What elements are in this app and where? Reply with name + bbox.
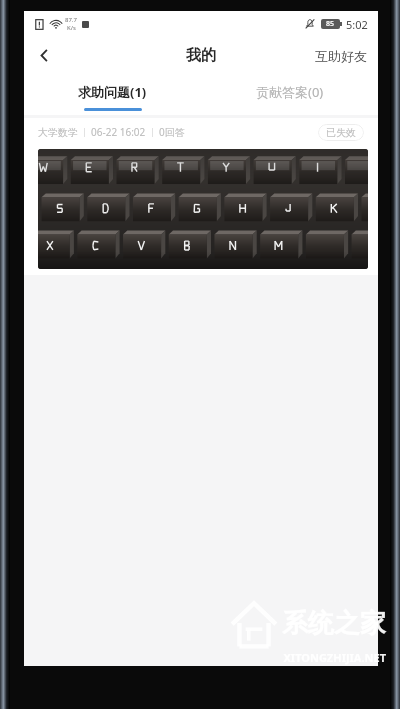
button[interactable]: 大学数学 xyxy=(24,118,378,275)
button[interactable]: Back xyxy=(24,37,64,74)
staticText: 87.7 xyxy=(65,16,77,24)
staticText: 互助好友 xyxy=(315,48,367,64)
staticText: 5:02 xyxy=(346,17,368,32)
button[interactable]: 互助好友 xyxy=(304,42,378,70)
staticText: XITONGZHIJIA.NET xyxy=(283,650,386,665)
staticText: 我的 xyxy=(186,46,216,65)
staticText: 系统之家 xyxy=(282,607,386,640)
button[interactable]: 求助问题(1) xyxy=(24,74,201,115)
staticText: K/s xyxy=(67,24,76,32)
staticText: 85 xyxy=(326,19,335,29)
staticText: 06-22 16:02 xyxy=(91,125,146,139)
staticText: 0回答 xyxy=(159,125,185,139)
button[interactable]: 贡献答案(0) xyxy=(201,74,378,115)
staticText: 大学数学 xyxy=(38,126,78,139)
staticText: 贡献答案(0) xyxy=(256,83,324,101)
staticText: 已失效 xyxy=(326,126,356,139)
staticText: 求助问题(1) xyxy=(78,83,147,101)
